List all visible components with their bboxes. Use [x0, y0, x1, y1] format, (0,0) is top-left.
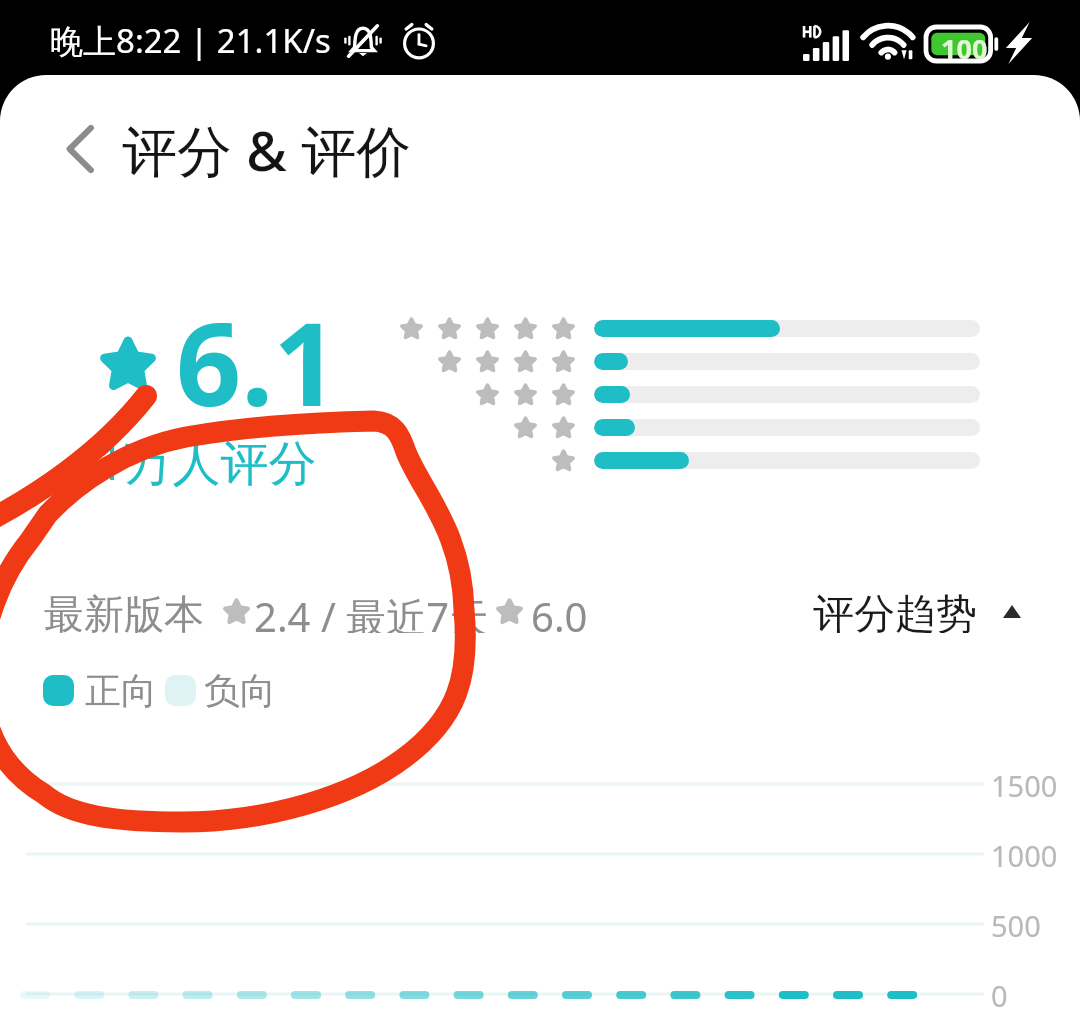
- staticText: 100: [941, 30, 988, 67]
- staticText: 最新版本: [44, 589, 204, 633]
- button[interactable]: Back: [0, 75, 122, 223]
- staticText: 2.4 / 最近7天: [254, 589, 490, 633]
- staticText: 1万人评分: [97, 429, 317, 495]
- staticText: 1500: [991, 766, 1058, 805]
- staticText: 评分趋势: [813, 589, 977, 633]
- button[interactable]: Back: [0, 75, 1080, 223]
- staticText: 正向: [85, 668, 157, 713]
- staticText: 6.1: [176, 284, 339, 439]
- staticText: 0: [991, 976, 1008, 1015]
- staticText: 500: [991, 906, 1041, 945]
- staticText: 6.0: [531, 589, 588, 633]
- staticText: 晚上8:22 | 21.1K/s: [50, 18, 331, 63]
- button[interactable]: 评分趋势: [813, 589, 1021, 633]
- staticText: 负向: [204, 668, 276, 713]
- staticText: 1000: [991, 836, 1058, 875]
- staticText: 评分 & 评价: [122, 112, 412, 187]
